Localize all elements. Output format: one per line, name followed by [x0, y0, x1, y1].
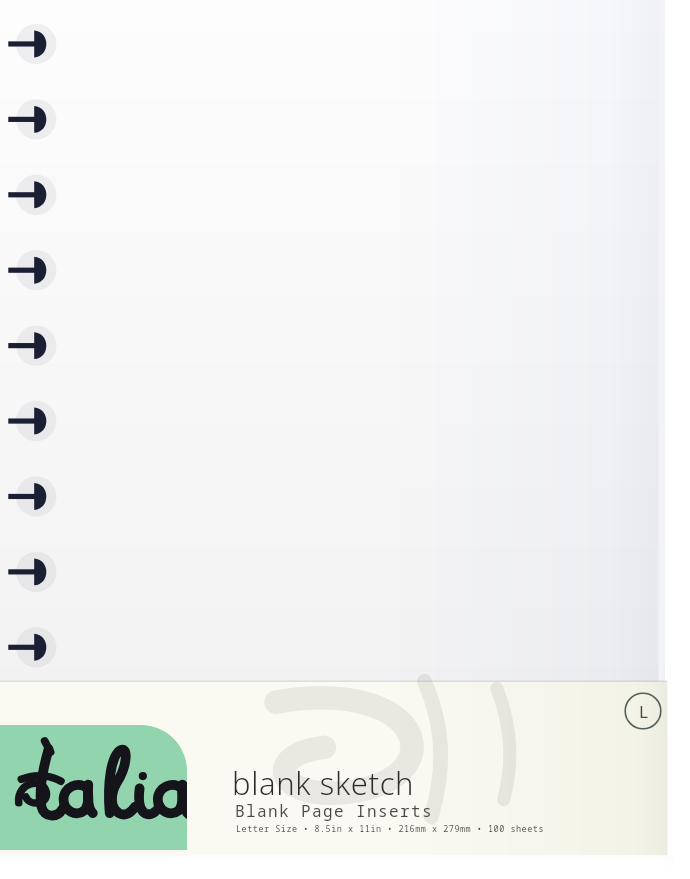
staticText: Letter Size • 8.5in x 11in • 216mm x 279… [236, 823, 545, 835]
button[interactable] [0, 725, 187, 850]
staticText: Blank Page Inserts [235, 800, 434, 822]
button[interactable]: Size L [624, 692, 662, 730]
button[interactable]: blank sketch [232, 762, 415, 804]
staticText: blank sketch [232, 762, 415, 804]
staticText: L [639, 700, 648, 723]
